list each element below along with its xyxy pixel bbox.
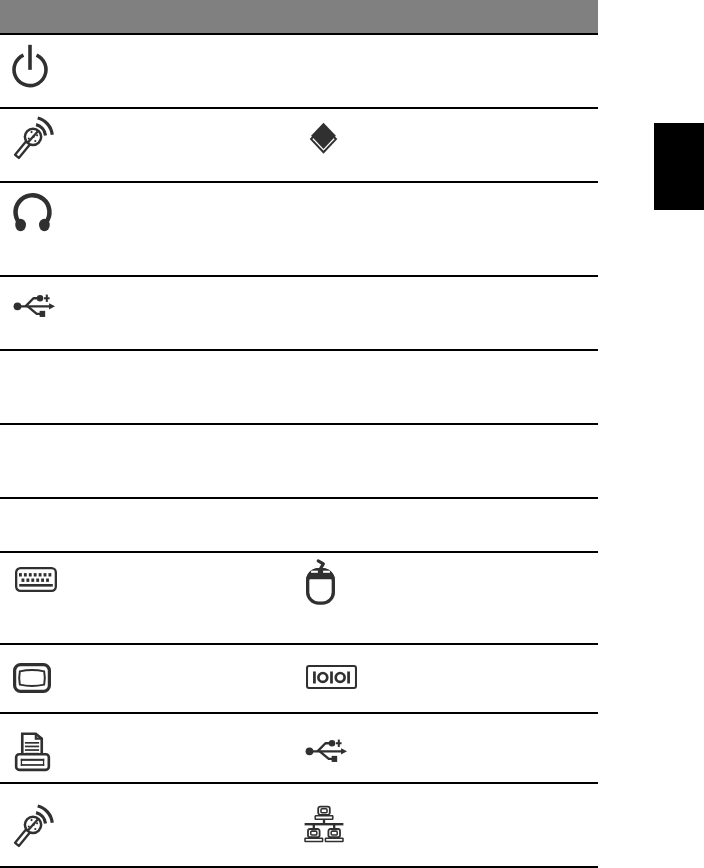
button[interactable]: Serial port	[306, 665, 357, 689]
button[interactable]: Display	[13, 663, 51, 693]
button[interactable]: Mouse	[306, 558, 335, 605]
button[interactable]: Network	[304, 806, 344, 846]
button[interactable]: Headphones	[13, 194, 52, 234]
button[interactable]: USB port	[14, 295, 55, 316]
button[interactable]: Power	[13, 44, 47, 85]
button[interactable]: Keyboard	[15, 567, 57, 592]
button[interactable]: Wireless microphone	[13, 805, 57, 849]
button[interactable]: Printer	[16, 732, 49, 770]
button[interactable]: Manual	[310, 122, 337, 154]
button[interactable]: USB port	[306, 740, 347, 761]
button[interactable]: Wireless microphone	[13, 117, 57, 161]
